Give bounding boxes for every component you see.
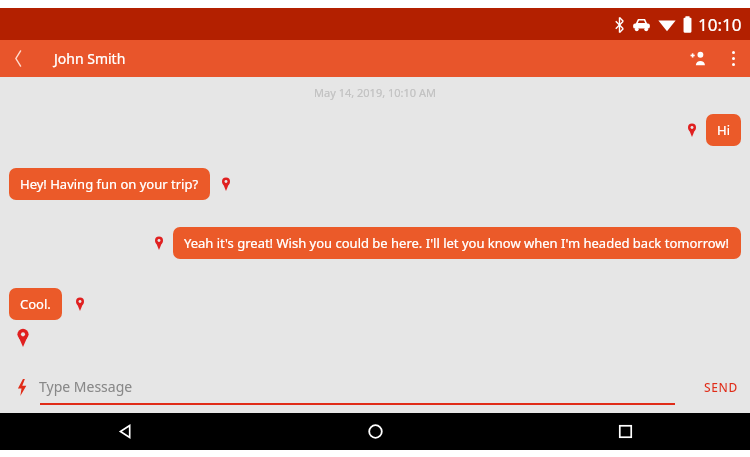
staticText: John Smith bbox=[54, 49, 126, 68]
button[interactable]: Type Message bbox=[39, 377, 692, 396]
button[interactable]: More options bbox=[717, 42, 750, 75]
button[interactable]: Cool. bbox=[9, 288, 62, 320]
button[interactable]: SEND bbox=[700, 379, 742, 395]
staticText: Hi bbox=[717, 121, 730, 139]
button[interactable]: Back bbox=[0, 40, 37, 77]
staticText: Yeah it's great! Wish you could be here.… bbox=[184, 234, 730, 252]
staticText: Hey! Having fun on your trip? bbox=[20, 175, 199, 193]
button[interactable]: Hey! Having fun on your trip? bbox=[9, 168, 210, 200]
button[interactable]: Home bbox=[250, 413, 500, 450]
staticText: May 14, 2019, 10:10 AM bbox=[0, 85, 750, 100]
button[interactable]: Hi bbox=[706, 114, 741, 146]
staticText: SEND bbox=[704, 379, 738, 395]
button[interactable]: Back bbox=[0, 413, 250, 450]
button[interactable]: Location bbox=[16, 328, 30, 347]
button[interactable]: Quick replies bbox=[12, 377, 32, 397]
button[interactable]: Add person bbox=[680, 40, 717, 77]
staticText: Type Message bbox=[39, 377, 133, 396]
button[interactable]: Recent apps bbox=[500, 413, 750, 450]
staticText: Cool. bbox=[20, 295, 51, 313]
button[interactable]: Yeah it's great! Wish you could be here.… bbox=[173, 227, 741, 259]
staticText: 10:10 bbox=[698, 13, 742, 36]
